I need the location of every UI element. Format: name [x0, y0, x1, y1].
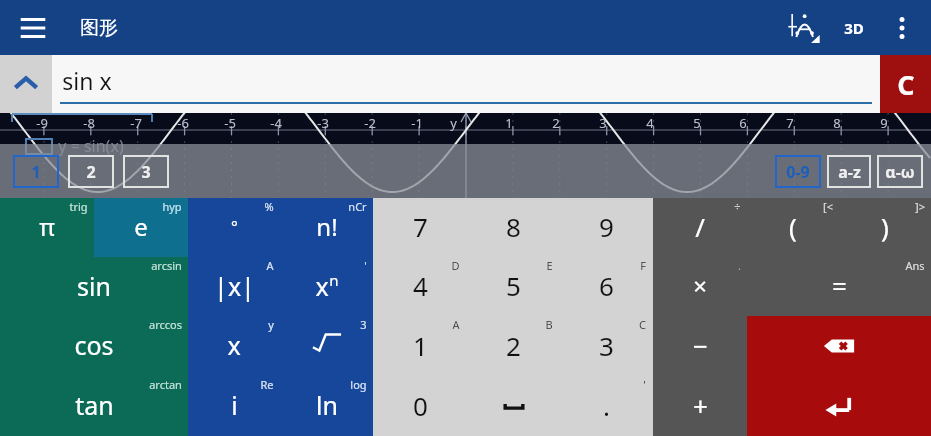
staticText: 9	[880, 114, 888, 132]
staticText: 2	[552, 114, 560, 132]
staticText: 4	[413, 268, 428, 303]
staticText: 3	[599, 114, 607, 132]
staticText: 6	[739, 114, 747, 132]
button[interactable]: −	[653, 316, 747, 376]
button[interactable]: log	[280, 376, 373, 436]
button[interactable]: A	[188, 257, 280, 316]
staticText: Ans	[905, 258, 925, 273]
staticText: n!	[316, 210, 338, 243]
button[interactable]: .	[653, 257, 747, 316]
staticText: i	[231, 388, 238, 422]
button[interactable]: ÷	[653, 198, 747, 257]
staticText: y	[268, 317, 274, 332]
button[interactable]: nCr	[280, 198, 373, 257]
button[interactable]: Graph view	[781, 5, 827, 51]
staticText: 9	[599, 209, 614, 244]
button[interactable]: Collapse keyboard	[0, 55, 52, 113]
button[interactable]: A	[373, 316, 467, 376]
staticText: -6	[177, 114, 189, 132]
staticText: -3	[317, 114, 329, 132]
button[interactable]: arccos	[0, 316, 188, 376]
staticText: e	[134, 210, 148, 243]
button[interactable]: B	[467, 316, 560, 376]
button[interactable]: α-ω	[877, 155, 923, 188]
staticText: 0-9	[786, 161, 810, 183]
staticText: 5	[693, 114, 701, 132]
button[interactable]: 2	[68, 155, 114, 188]
button[interactable]: '	[280, 257, 373, 316]
staticText: 0	[413, 388, 428, 423]
staticText: %	[264, 199, 274, 214]
staticText: trig	[69, 199, 88, 214]
button[interactable]: %	[188, 198, 280, 257]
staticText: π	[39, 210, 55, 243]
staticText: 图形	[80, 16, 118, 40]
button[interactable]: ]>	[839, 198, 931, 257]
staticText: /	[695, 209, 705, 244]
staticText: y = sin(x)	[58, 135, 124, 157]
button[interactable]: [<	[747, 198, 839, 257]
button[interactable]: arcsin	[0, 257, 188, 316]
button[interactable]: C	[560, 316, 653, 376]
button[interactable]: C	[880, 55, 931, 113]
button[interactable]: y	[188, 316, 280, 376]
button[interactable]: '	[560, 376, 653, 436]
staticText: 6	[599, 268, 614, 303]
staticText: nCr	[348, 199, 367, 214]
staticText: -8	[83, 114, 95, 132]
button[interactable]: D	[373, 257, 467, 316]
staticText: °	[231, 216, 238, 238]
button[interactable]: 7	[373, 198, 467, 257]
button[interactable]: Square root	[280, 316, 373, 376]
button[interactable]: arctan	[0, 376, 188, 436]
staticText: -7	[130, 114, 142, 132]
button[interactable]: 1	[13, 155, 59, 188]
staticText: x	[227, 328, 241, 362]
button[interactable]: +	[653, 376, 747, 436]
staticText: n	[329, 270, 339, 290]
button[interactable]: Ans	[747, 257, 931, 316]
button[interactable]: hyp	[94, 198, 188, 257]
staticText: F	[640, 258, 646, 273]
staticText: ln	[316, 388, 338, 422]
staticText: 1	[505, 114, 513, 132]
staticText: 7	[413, 209, 428, 244]
button[interactable]: sin x	[52, 55, 880, 113]
button[interactable]: 8	[467, 198, 560, 257]
staticText: -4	[270, 114, 282, 132]
staticText: +	[693, 388, 708, 423]
staticText: (	[789, 209, 797, 244]
button[interactable]: More options	[879, 5, 925, 51]
staticText: 8	[833, 114, 841, 132]
staticText: 8	[506, 209, 521, 244]
staticText: [<	[823, 199, 833, 214]
button[interactable]: a-z	[827, 155, 871, 188]
staticText: D	[451, 258, 460, 273]
button[interactable]: Menu	[10, 5, 56, 51]
button[interactable]: Backspace	[747, 316, 931, 376]
button[interactable]: 3	[123, 155, 169, 188]
staticText: 3	[141, 161, 151, 183]
staticText: 4	[646, 114, 654, 132]
staticText: 7	[786, 114, 794, 132]
staticText: hyp	[162, 199, 182, 214]
staticText: -1	[411, 114, 423, 132]
button[interactable]: Enter	[747, 376, 931, 436]
staticText: arccos	[149, 317, 182, 332]
staticText: 1	[31, 161, 41, 183]
button[interactable]: F	[560, 257, 653, 316]
button[interactable]: 0	[373, 376, 467, 436]
button[interactable]: trig	[0, 198, 94, 257]
button[interactable]: E	[467, 257, 560, 316]
button[interactable]: 3D	[831, 5, 877, 51]
staticText: =	[832, 268, 847, 303]
button[interactable]: Space	[467, 376, 560, 436]
staticText: ÷	[734, 199, 741, 214]
button[interactable]: Re	[188, 376, 280, 436]
staticText: E	[546, 258, 553, 273]
staticText: arctan	[149, 377, 182, 392]
staticText: .	[603, 388, 610, 423]
button[interactable]: 9	[560, 198, 653, 257]
button[interactable]: 0-9	[775, 155, 821, 188]
staticText: 3	[360, 317, 367, 332]
